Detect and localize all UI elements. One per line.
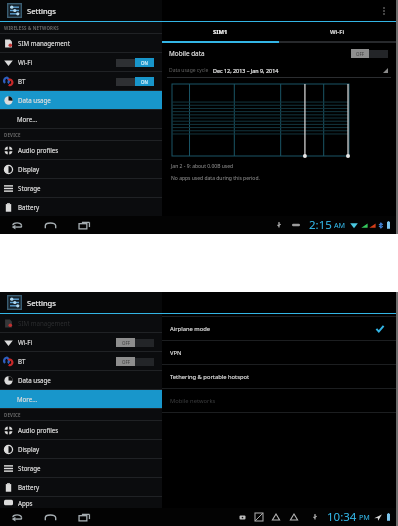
button[interactable]: Audio profiles — [0, 141, 162, 159]
staticText: SIM1 — [213, 28, 228, 36]
button[interactable]: Wi-Fi — [279, 22, 396, 43]
button[interactable]: BT — [0, 352, 162, 370]
button[interactable]: OFF — [116, 357, 154, 366]
staticText: Display — [18, 445, 40, 453]
button[interactable]: Recents — [76, 217, 92, 233]
button[interactable]: Recents — [76, 509, 92, 525]
staticText: Mobile networks — [170, 397, 216, 405]
button[interactable]: Tethering & portable hotspot — [162, 365, 396, 388]
staticText: SIM management — [18, 39, 70, 47]
staticText: Storage — [18, 464, 41, 472]
button[interactable]: Display — [0, 160, 162, 178]
button[interactable]: Wi-Fi — [0, 53, 162, 71]
button[interactable]: Wi-Fi — [0, 333, 162, 351]
staticText: OFF — [356, 51, 364, 57]
staticText: Audio profiles — [18, 146, 59, 154]
button[interactable]: Storage — [0, 459, 162, 477]
staticText: ON — [141, 60, 148, 66]
staticText: 10:34 — [327, 509, 357, 525]
button[interactable]: Back — [8, 217, 24, 233]
staticText: Data usage cycle — [169, 67, 209, 74]
button[interactable]: More... — [0, 390, 162, 408]
button[interactable]: OFF — [116, 338, 154, 347]
staticText: More... — [17, 115, 38, 123]
staticText: Airplane mode — [170, 325, 211, 333]
staticText: Jan 2 - 9: about 0.00B used — [171, 163, 234, 170]
button[interactable]: Data usage — [0, 371, 162, 389]
staticText: DEVICE — [4, 412, 21, 418]
button[interactable]: More options — [378, 5, 390, 17]
button[interactable]: Back — [8, 509, 24, 525]
button[interactable]: Battery — [0, 198, 162, 216]
staticText: Wi-Fi — [330, 28, 345, 36]
staticText: Data usage — [18, 376, 51, 384]
button[interactable]: ON — [116, 77, 154, 86]
button[interactable]: Home — [42, 509, 58, 525]
staticText: ON — [141, 79, 148, 85]
button[interactable]: ON — [116, 58, 154, 67]
staticText: Battery — [18, 203, 40, 211]
staticText: DEVICE — [4, 132, 21, 138]
button[interactable]: Battery — [0, 478, 162, 496]
staticText: BT — [18, 357, 26, 365]
button[interactable]: More... — [0, 110, 162, 128]
button[interactable]: Data usage — [0, 91, 162, 109]
staticText: Battery — [18, 483, 40, 491]
staticText: Tethering & portable hotspot — [170, 373, 250, 381]
staticText: PM — [359, 512, 370, 522]
button[interactable]: OFF — [351, 49, 388, 58]
button[interactable]: Mobile networks — [162, 389, 396, 412]
staticText: Dec 12, 2013 – Jan 9, 2014 — [213, 67, 279, 74]
button[interactable]: SIM management — [0, 34, 162, 52]
button[interactable]: Home — [42, 217, 58, 233]
button[interactable]: Storage — [0, 179, 162, 197]
button[interactable]: SIM management — [0, 314, 162, 332]
staticText: AM — [334, 220, 346, 230]
staticText: Settings — [27, 298, 56, 308]
button[interactable]: SIM1 — [162, 22, 279, 43]
staticText: Wi-Fi — [18, 58, 33, 66]
staticText: No apps used data during this period. — [171, 175, 260, 182]
staticText: Wi-Fi — [18, 338, 33, 346]
staticText: Display — [18, 165, 40, 173]
staticText: VPN — [170, 349, 182, 357]
staticText: Data usage — [18, 96, 51, 104]
button[interactable]: BT — [0, 72, 162, 90]
staticText: Storage — [18, 184, 41, 192]
staticText: Apps — [18, 499, 33, 507]
button[interactable]: Apps — [0, 497, 162, 508]
staticText: OFF — [122, 359, 130, 365]
staticText: OFF — [122, 340, 130, 346]
button[interactable]: VPN — [162, 341, 396, 364]
staticText: SIM management — [18, 319, 70, 327]
button[interactable]: Audio profiles — [0, 421, 162, 439]
staticText: 2:15 — [309, 217, 332, 233]
staticText: Mobile data — [169, 49, 205, 58]
staticText: BT — [18, 77, 26, 85]
staticText: More... — [17, 395, 38, 403]
staticText: WIRELESS & NETWORKS — [4, 25, 59, 31]
staticText: Settings — [27, 6, 56, 16]
button[interactable]: Airplane mode — [162, 317, 396, 340]
button[interactable]: Display — [0, 440, 162, 458]
staticText: Audio profiles — [18, 426, 59, 434]
